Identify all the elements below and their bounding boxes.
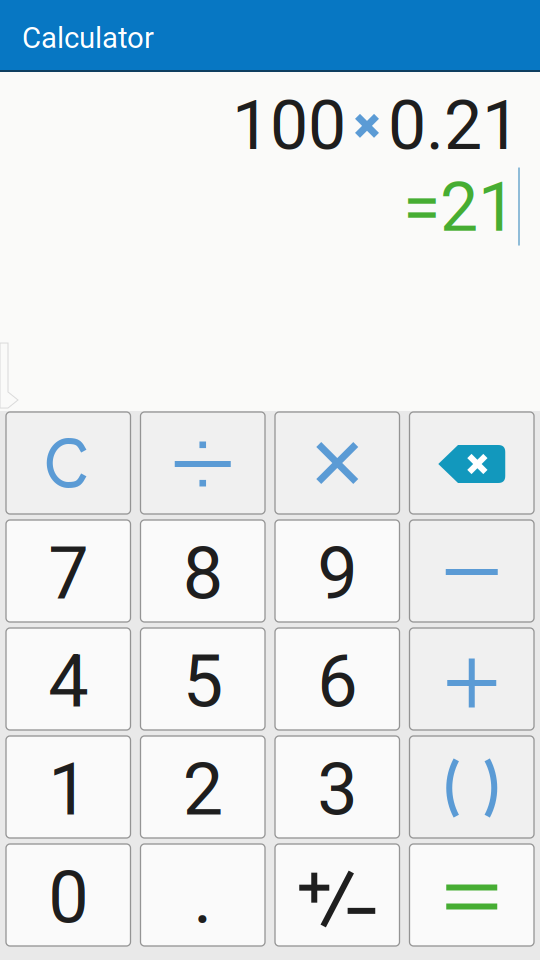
staticText: 0.21 — [388, 86, 520, 166]
staticText: 9 — [317, 532, 357, 616]
staticText: 7 — [48, 532, 88, 616]
button[interactable]: 0 — [6, 844, 130, 946]
staticText: 5 — [183, 640, 223, 724]
button[interactable]: . — [140, 844, 265, 946]
button[interactable]: Minus — [409, 520, 534, 622]
staticText: Calculator — [22, 21, 154, 55]
staticText: =21 — [403, 168, 516, 247]
staticText: 1 — [48, 748, 88, 832]
button[interactable]: Multiply — [275, 412, 399, 514]
button[interactable]: 6 — [275, 628, 399, 730]
button[interactable]: Plus or minus — [275, 844, 399, 946]
button[interactable]: 9 — [275, 520, 399, 622]
staticText: 100 — [232, 86, 346, 166]
button[interactable]: 4 — [6, 628, 130, 730]
button[interactable]: Divide — [140, 412, 265, 514]
staticText: . — [193, 856, 212, 940]
button[interactable]: 3 — [275, 736, 399, 838]
button[interactable]: Backspace — [409, 412, 534, 514]
staticText: 6 — [317, 640, 357, 724]
staticText: 4 — [48, 640, 88, 724]
button[interactable]: Equals — [409, 844, 534, 946]
button[interactable]: 7 — [6, 520, 130, 622]
button[interactable]: 1 — [6, 736, 130, 838]
staticText: 3 — [317, 748, 357, 832]
button[interactable]: Parentheses — [409, 736, 534, 838]
staticText: 2 — [183, 748, 223, 832]
staticText: 8 — [183, 532, 223, 616]
staticText: 0 — [48, 856, 88, 940]
button[interactable]: 8 — [140, 520, 265, 622]
button[interactable]: 5 — [140, 628, 265, 730]
button[interactable]: 2 — [140, 736, 265, 838]
button[interactable]: Plus — [409, 628, 534, 730]
button[interactable]: Clear — [6, 412, 130, 514]
button[interactable]: Calculator — [0, 0, 540, 72]
